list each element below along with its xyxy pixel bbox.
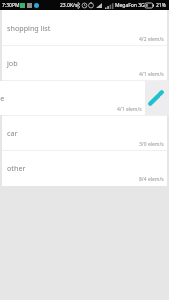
button[interactable]: other xyxy=(2,151,167,185)
staticText: 21% xyxy=(156,2,166,9)
staticText: other xyxy=(7,163,26,173)
staticText: 4/1 elem/s xyxy=(117,106,142,113)
button[interactable]: shopping list xyxy=(2,10,167,45)
button[interactable]: Edit xyxy=(143,81,169,115)
staticText: 23.0K/s xyxy=(60,2,78,9)
button[interactable]: game xyxy=(0,81,145,115)
staticText: 8/4 elem/s xyxy=(139,176,164,183)
staticText: car xyxy=(7,128,18,138)
button[interactable]: job xyxy=(2,46,167,80)
staticText: 3/0 elem/s xyxy=(139,141,164,148)
staticText: 7:30PM xyxy=(2,2,20,9)
button[interactable]: car xyxy=(2,116,167,150)
staticText: 4/1 elem/s xyxy=(139,71,164,78)
staticText: shopping list xyxy=(7,23,51,33)
staticText: job xyxy=(7,58,18,68)
staticText: 4/2 elem/s xyxy=(139,36,164,43)
staticText: MegaFon 3G xyxy=(115,2,145,9)
staticText: game xyxy=(0,93,5,103)
